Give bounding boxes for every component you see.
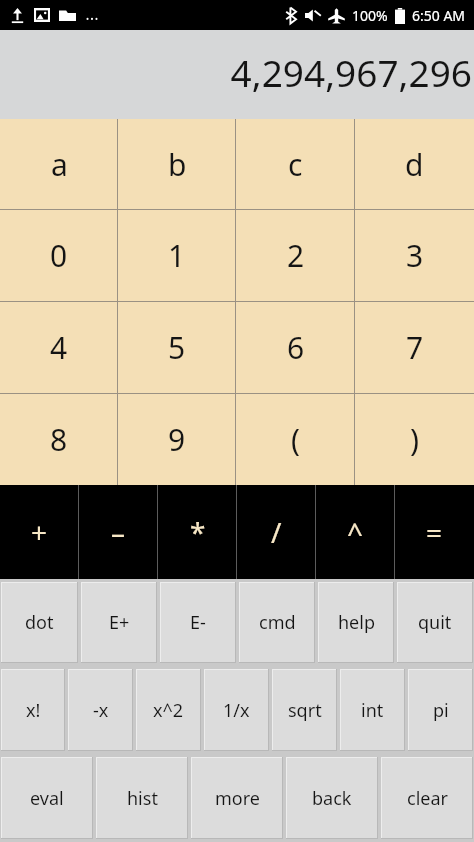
staticText: 100% (352, 6, 388, 25)
button[interactable]: ( (236, 394, 355, 485)
staticText: sqrt (288, 698, 322, 723)
staticText: = (426, 513, 443, 551)
staticText: c (288, 144, 303, 185)
button[interactable]: help (318, 582, 394, 663)
button[interactable]: 0 (0, 210, 118, 301)
button[interactable]: x^2 (136, 669, 201, 751)
staticText: a (51, 144, 68, 185)
staticText: clear (407, 786, 448, 811)
staticText: 5 (168, 327, 186, 368)
staticText: help (338, 610, 375, 635)
button[interactable]: E- (160, 582, 236, 663)
button[interactable]: / (237, 485, 316, 579)
button[interactable]: sqrt (272, 669, 337, 751)
button[interactable]: E+ (81, 582, 157, 663)
staticText: 3 (406, 235, 424, 276)
staticText: 9 (168, 419, 186, 460)
staticText: 2 (287, 235, 305, 276)
button[interactable]: b (118, 119, 236, 209)
button[interactable]: = (395, 485, 474, 579)
staticText: 4 (50, 327, 68, 368)
staticText: hist (127, 786, 158, 811)
button[interactable]: 6 (236, 302, 355, 393)
staticText: 1 (168, 235, 186, 276)
button[interactable]: x! (1, 669, 65, 751)
button[interactable]: back (286, 757, 378, 839)
staticText: * (190, 513, 206, 551)
staticText: d (405, 144, 424, 185)
button[interactable]: 2 (236, 210, 355, 301)
button[interactable]: ) (355, 394, 474, 485)
button[interactable]: * (158, 485, 237, 579)
staticText: back (312, 786, 352, 811)
button[interactable]: 7 (355, 302, 474, 393)
staticText: / (271, 513, 282, 551)
button[interactable]: more (191, 757, 283, 839)
button[interactable]: 1 (118, 210, 236, 301)
staticText: 4,294,967,296 (230, 47, 472, 97)
staticText: 6 (287, 327, 305, 368)
button[interactable]: – (79, 485, 158, 579)
button[interactable]: hist (96, 757, 188, 839)
staticText: pi (433, 698, 449, 723)
button[interactable]: d (355, 119, 474, 209)
button[interactable]: 3 (355, 210, 474, 301)
staticText: E- (190, 610, 206, 635)
staticText: 0 (50, 235, 68, 276)
button[interactable]: + (0, 485, 79, 579)
button[interactable]: a (0, 119, 118, 209)
button[interactable]: 1/x (204, 669, 269, 751)
button[interactable]: c (236, 119, 355, 209)
staticText: ) (410, 419, 419, 460)
button[interactable]: cmd (239, 582, 315, 663)
button[interactable]: int (340, 669, 405, 751)
button[interactable]: 8 (0, 394, 118, 485)
staticText: 7 (406, 327, 424, 368)
button[interactable]: ^ (316, 485, 395, 579)
button[interactable]: clear (381, 757, 473, 839)
staticText: dot (25, 610, 54, 635)
staticText: b (168, 144, 187, 185)
staticText: + (31, 513, 48, 551)
staticText: – (111, 513, 126, 551)
staticText: -x (93, 698, 109, 723)
button[interactable]: 4 (0, 302, 118, 393)
staticText: int (361, 698, 384, 723)
button[interactable]: 5 (118, 302, 236, 393)
staticText: quit (418, 610, 452, 635)
button[interactable]: quit (397, 582, 473, 663)
staticText: 6:50 AM (412, 6, 466, 25)
staticText: x! (26, 698, 41, 723)
staticText: 8 (50, 419, 68, 460)
staticText: 1/x (223, 698, 250, 723)
staticText: ^ (347, 513, 364, 551)
staticText: more (215, 786, 260, 811)
staticText: ( (291, 419, 300, 460)
button[interactable]: 9 (118, 394, 236, 485)
staticText: x^2 (153, 698, 184, 723)
staticText: cmd (259, 610, 296, 635)
button[interactable]: pi (408, 669, 473, 751)
button[interactable]: eval (1, 757, 93, 839)
button[interactable]: dot (1, 582, 78, 663)
staticText: eval (30, 786, 64, 811)
staticText: E+ (109, 610, 130, 635)
button[interactable]: -x (68, 669, 133, 751)
